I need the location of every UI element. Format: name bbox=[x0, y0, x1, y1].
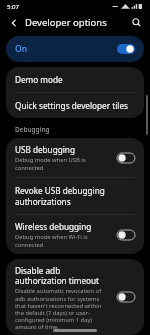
button[interactable]: On bbox=[6, 36, 144, 62]
button[interactable]: Off bbox=[117, 153, 135, 163]
staticText: Disable adb authorization timeout bbox=[15, 265, 111, 286]
staticText: Debugging bbox=[15, 125, 50, 134]
staticText: 5:07 bbox=[7, 3, 19, 11]
staticText: Demo mode bbox=[15, 74, 63, 85]
staticText: Debug mode when Wi-Fi is connected bbox=[15, 233, 111, 248]
staticText: Developer options bbox=[25, 16, 107, 29]
button[interactable]: Demo mode bbox=[6, 67, 144, 92]
staticText: Disable automatic revocation of adb auth… bbox=[15, 287, 111, 329]
staticText: Revoke USB debugging authorizations bbox=[15, 185, 135, 207]
button[interactable]: On bbox=[117, 44, 135, 54]
staticText: Wireless debugging bbox=[15, 221, 92, 232]
button[interactable]: Revoke USB debugging authorizations bbox=[6, 178, 144, 214]
button[interactable]: Wireless debugging bbox=[6, 215, 144, 254]
button[interactable]: Off bbox=[117, 292, 135, 302]
button[interactable]: USB debugging bbox=[6, 138, 144, 177]
staticText: Quick settings developer tiles bbox=[15, 100, 128, 111]
button[interactable]: Off bbox=[117, 230, 135, 240]
staticText: On bbox=[15, 43, 27, 55]
staticText: Debug mode when USB is connected bbox=[15, 156, 111, 171]
button[interactable]: Disable adb authorization timeout bbox=[6, 259, 144, 335]
staticText: USB debugging bbox=[15, 144, 75, 155]
button[interactable]: Back bbox=[6, 15, 21, 30]
button[interactable]: Search bbox=[129, 15, 144, 30]
button[interactable]: Quick settings developer tiles bbox=[6, 93, 144, 118]
